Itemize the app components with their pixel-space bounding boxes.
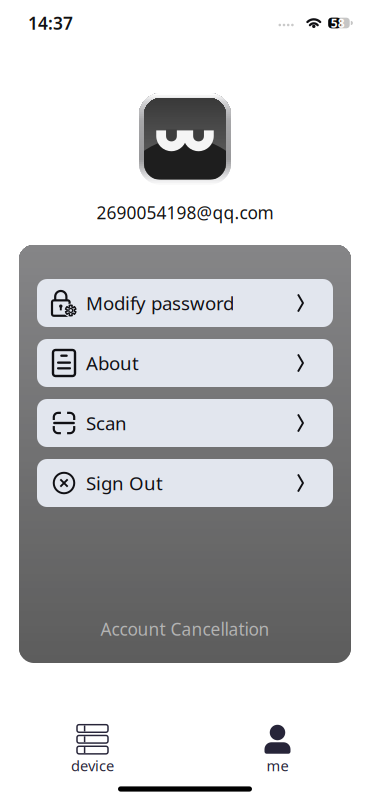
button[interactable]: Scan — [37, 399, 333, 447]
button[interactable]: Sign Out — [37, 459, 333, 507]
staticText: About — [86, 351, 139, 375]
staticText: Scan — [86, 411, 127, 435]
button[interactable]: About — [37, 339, 333, 387]
staticText: Modify password — [86, 291, 234, 315]
button[interactable]: me — [185, 718, 370, 778]
button[interactable]: Account Cancellation — [19, 607, 351, 651]
staticText: 58 — [331, 15, 345, 31]
staticText: device — [71, 756, 114, 775]
button[interactable]: device — [0, 718, 185, 778]
staticText: Account Cancellation — [100, 617, 269, 640]
staticText: Sign Out — [86, 471, 163, 495]
staticText: me — [266, 756, 288, 775]
staticText: 14:37 — [28, 11, 73, 34]
button[interactable]: Modify password — [37, 279, 333, 327]
staticText: 2690054198@qq.com — [96, 201, 273, 224]
